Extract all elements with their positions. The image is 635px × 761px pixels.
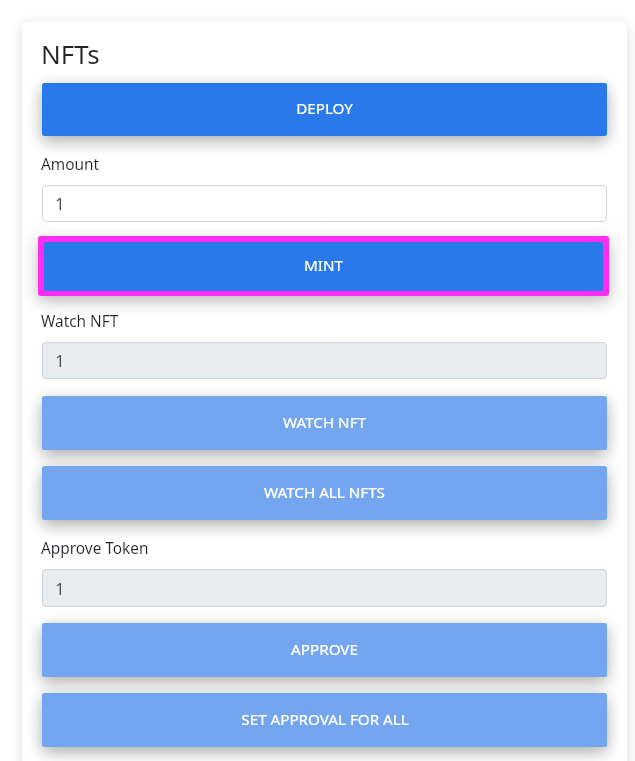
- staticText: Approve Token: [41, 538, 149, 559]
- staticText: MINT: [304, 255, 343, 276]
- staticText: NFTs: [41, 36, 100, 71]
- button[interactable]: MINT: [38, 236, 609, 296]
- button[interactable]: SET APPROVAL FOR ALL: [42, 693, 607, 747]
- staticText: 1: [55, 349, 65, 372]
- staticText: 1: [55, 577, 65, 600]
- button[interactable]: WATCH NFT: [42, 396, 607, 450]
- staticText: DEPLOY: [296, 98, 353, 119]
- staticText: APPROVE: [291, 639, 358, 660]
- staticText: SET APPROVAL FOR ALL: [241, 709, 409, 730]
- button[interactable]: 1: [42, 342, 607, 379]
- staticText: WATCH ALL NFTS: [264, 482, 385, 503]
- button[interactable]: 1: [42, 569, 607, 607]
- button[interactable]: 1: [42, 185, 607, 222]
- button[interactable]: WATCH ALL NFTS: [42, 466, 607, 520]
- staticText: 1: [55, 192, 65, 215]
- button[interactable]: APPROVE: [42, 623, 607, 677]
- button[interactable]: DEPLOY: [42, 83, 607, 136]
- staticText: Amount: [41, 154, 100, 175]
- staticText: Watch NFT: [41, 311, 119, 332]
- staticText: WATCH NFT: [283, 412, 366, 433]
